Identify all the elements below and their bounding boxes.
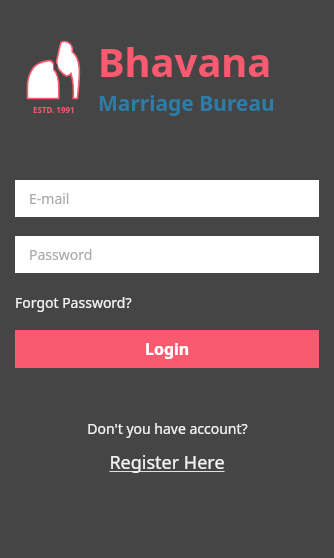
staticText: Login xyxy=(145,338,190,360)
button[interactable]: Forgot Password? xyxy=(15,291,132,314)
staticText: ESTD. 1991 xyxy=(33,104,75,115)
button[interactable]: Register Here xyxy=(105,449,229,476)
button[interactable]: Password xyxy=(15,236,319,273)
staticText: E-mail xyxy=(29,189,70,208)
staticText: Forgot Password? xyxy=(15,293,132,312)
staticText: Password xyxy=(29,245,93,264)
button[interactable]: Login xyxy=(15,330,319,368)
staticText: Register Here xyxy=(109,450,225,475)
staticText: Marriage Bureau xyxy=(98,89,275,118)
staticText: Don't you have account? xyxy=(87,419,248,438)
staticText: Bhavana xyxy=(98,34,272,88)
button[interactable]: E-mail xyxy=(15,180,319,217)
